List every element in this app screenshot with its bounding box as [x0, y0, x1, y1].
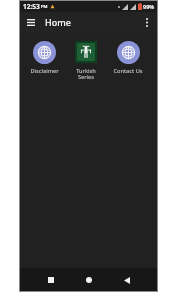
- staticText: 99%: [143, 3, 155, 10]
- button[interactable]: Back: [116, 269, 138, 291]
- staticText: PM: [41, 4, 48, 10]
- staticText: Home: [45, 16, 71, 28]
- staticText: Contact Us: [113, 67, 143, 75]
- button[interactable]: Turkish Series: [65, 39, 107, 82]
- staticText: Turkish Series: [76, 67, 96, 81]
- button[interactable]: More options: [140, 15, 154, 29]
- button[interactable]: Home: [78, 269, 100, 291]
- button[interactable]: Contact Us: [107, 39, 149, 76]
- button[interactable]: Open navigation menu: [24, 15, 38, 29]
- button[interactable]: Disclaimer: [23, 39, 65, 76]
- button[interactable]: Recent apps: [40, 269, 62, 291]
- staticText: Disclaimer: [30, 67, 59, 75]
- staticText: 12:53: [23, 2, 40, 11]
